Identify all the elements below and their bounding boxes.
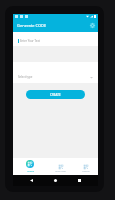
button[interactable]: Enter Your Text bbox=[13, 32, 98, 46]
staticText: Scan Code bbox=[55, 170, 66, 173]
button[interactable]: Back bbox=[26, 175, 37, 186]
staticText: CREATE bbox=[50, 93, 61, 97]
button[interactable]: Scan Code bbox=[47, 158, 74, 175]
staticText: Create bbox=[27, 170, 34, 173]
staticText: Generate CODE bbox=[17, 23, 47, 28]
button[interactable]: Select type bbox=[13, 62, 98, 83]
staticText: History bbox=[82, 170, 90, 173]
button[interactable]: History bbox=[74, 158, 98, 175]
staticText: Enter Your Text bbox=[20, 39, 40, 43]
button[interactable]: Recents bbox=[74, 175, 85, 186]
staticText: Select type bbox=[18, 75, 33, 79]
button[interactable]: Home bbox=[50, 175, 61, 186]
button[interactable]: Settings bbox=[88, 21, 97, 30]
button[interactable]: Create bbox=[13, 158, 47, 175]
button[interactable]: CREATE bbox=[26, 90, 85, 99]
